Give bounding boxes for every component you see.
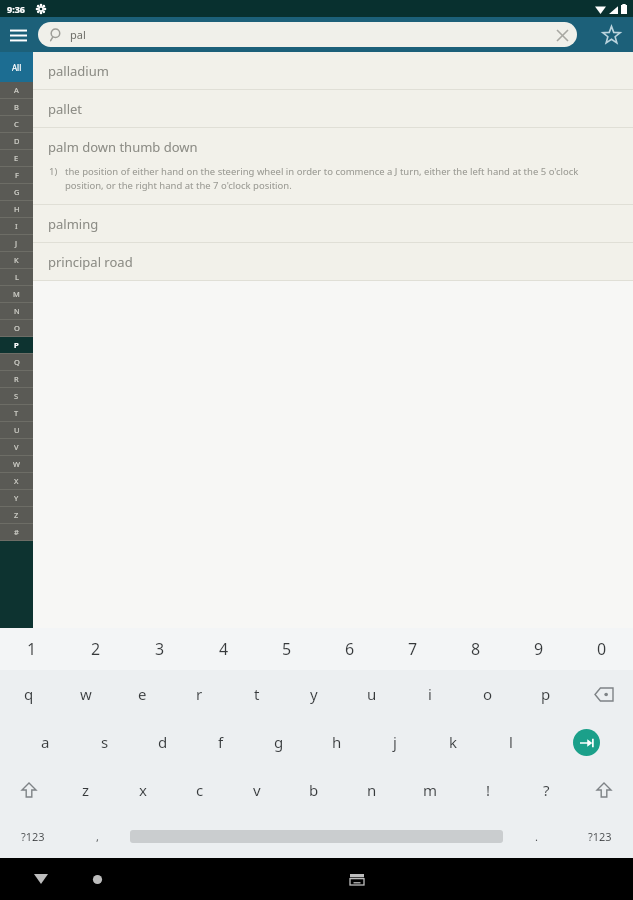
button[interactable]: r [171,670,228,718]
button[interactable]: A [0,82,33,98]
button[interactable]: palladium [33,52,633,89]
button[interactable]: z [57,766,114,814]
button[interactable]: 1 [0,628,64,670]
button[interactable]: O [0,320,33,336]
button[interactable]: palming [33,205,633,242]
button[interactable]: ? [517,766,575,814]
button[interactable]: f [192,718,250,766]
button[interactable]: N [0,303,33,319]
button[interactable]: x [114,766,171,814]
button[interactable]: 0 [570,628,633,670]
button[interactable]: U [0,422,33,438]
button[interactable]: h [308,718,366,766]
button[interactable]: Enter [540,718,633,766]
staticText: 1 [27,638,37,660]
button[interactable]: B [0,99,33,115]
button[interactable]: M [0,286,33,302]
button[interactable]: S [0,388,33,404]
button[interactable]: Keyboard [342,864,372,894]
button[interactable]: , [66,814,128,858]
button[interactable]: . [505,814,567,858]
button[interactable]: pallet [33,90,633,127]
button[interactable]: Space [130,814,503,858]
button[interactable]: n [343,766,401,814]
button[interactable]: Y [0,490,33,506]
button[interactable]: i [401,670,459,718]
button[interactable]: j [366,718,424,766]
button[interactable]: m [401,766,459,814]
staticText: d [158,732,168,752]
staticText: P [14,340,19,350]
staticText: . [535,829,538,844]
button[interactable]: All [0,52,33,82]
staticText: W [13,459,20,469]
button[interactable]: principal road [33,243,633,280]
button[interactable]: ?123 [567,814,633,858]
button[interactable]: Favorite [594,18,628,52]
button[interactable]: Shift [575,766,633,814]
button[interactable]: 7 [381,628,444,670]
button[interactable]: L [0,269,33,285]
button[interactable]: G [0,184,33,200]
button[interactable]: Shift [0,766,57,814]
button[interactable]: s [75,718,134,766]
button[interactable]: D [0,133,33,149]
button[interactable]: I [0,218,33,234]
button[interactable]: T [0,405,33,421]
button[interactable]: pal [38,22,577,47]
button[interactable]: Back [26,864,56,894]
button[interactable]: 6 [318,628,381,670]
button[interactable]: W [0,456,33,472]
button[interactable]: K [0,252,33,268]
button[interactable]: R [0,371,33,387]
button[interactable]: 3 [128,628,192,670]
button[interactable]: e [114,670,171,718]
staticText: L [15,272,19,282]
button[interactable]: 8 [444,628,507,670]
button[interactable]: C [0,116,33,132]
button[interactable]: 2 [64,628,128,670]
button[interactable]: k [424,718,482,766]
staticText: M [13,289,20,299]
button[interactable]: V [0,439,33,455]
button[interactable]: g [250,718,308,766]
button[interactable]: Clear [551,24,573,46]
button[interactable]: a [16,718,75,766]
staticText: S [14,391,19,401]
staticText: n [367,780,377,800]
button[interactable]: t [228,670,285,718]
button[interactable]: v [228,766,285,814]
button[interactable]: J [0,235,33,251]
button[interactable]: Menu [4,21,32,49]
staticText: f [218,732,224,752]
button[interactable]: X [0,473,33,489]
button[interactable]: P [0,337,33,353]
button[interactable]: 9 [507,628,570,670]
button[interactable]: p [517,670,575,718]
button[interactable]: 4 [192,628,255,670]
button[interactable]: 5 [255,628,318,670]
button[interactable]: ?123 [0,814,66,858]
staticText: G [14,187,20,197]
button[interactable]: d [134,718,192,766]
button[interactable]: # [0,524,33,540]
button[interactable]: E [0,150,33,166]
button[interactable]: Home [82,864,112,894]
button[interactable]: F [0,167,33,183]
staticText: E [14,153,19,163]
button[interactable]: Z [0,507,33,523]
button[interactable]: palm down thumb down [33,128,633,204]
button[interactable]: y [285,670,343,718]
button[interactable]: u [343,670,401,718]
button[interactable]: b [285,766,343,814]
button[interactable]: Backspace [575,670,633,718]
button[interactable]: o [459,670,517,718]
button[interactable]: Q [0,354,33,370]
button[interactable]: q [0,670,57,718]
button[interactable]: l [482,718,540,766]
button[interactable]: ! [459,766,517,814]
button[interactable]: H [0,201,33,217]
button[interactable]: c [171,766,228,814]
staticText: 0 [597,638,607,660]
button[interactable]: w [57,670,114,718]
